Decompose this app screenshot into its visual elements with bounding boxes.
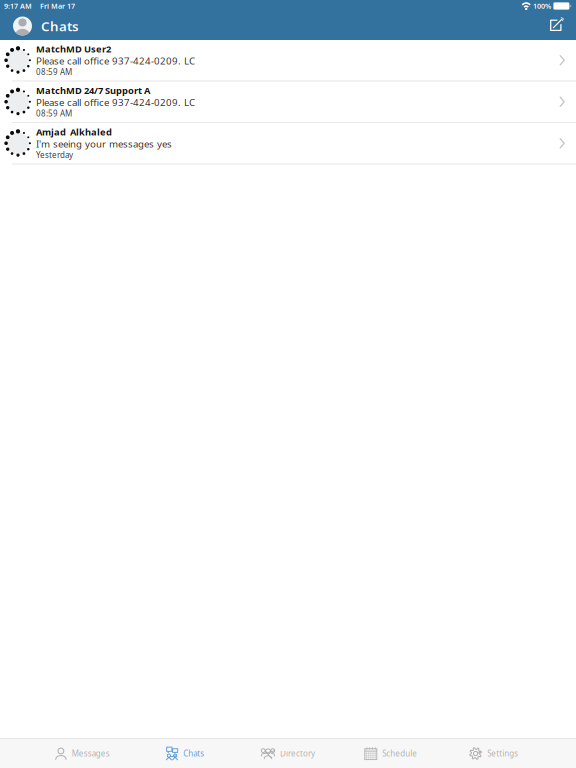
- staticText: Yesterday: [36, 150, 73, 160]
- staticText: MatchMD 24/7 Support A: [36, 84, 150, 97]
- staticText: Messages: [72, 748, 110, 759]
- button[interactable]: Settings: [442, 739, 545, 768]
- staticText: Chats: [41, 17, 79, 35]
- staticText: Please call office 937-424-0209. LC: [36, 54, 195, 67]
- button[interactable]: Directory: [237, 739, 339, 768]
- button[interactable]: MatchMD User2: [0, 40, 576, 81]
- staticText: 08:59 AM: [36, 67, 72, 77]
- button[interactable]: MatchMD 24/7 Support A: [0, 81, 576, 123]
- staticText: 9:17 AM: [4, 1, 32, 11]
- staticText: Settings: [487, 748, 518, 759]
- button[interactable]: Messages: [31, 739, 134, 768]
- staticText: I'm seeing your messages yes: [36, 137, 172, 150]
- staticText: Chats: [183, 748, 204, 759]
- button[interactable]: Amjad Alkhaled: [0, 123, 576, 164]
- button[interactable]: Schedule: [339, 739, 442, 768]
- staticText: Fri Mar 17: [40, 1, 75, 11]
- staticText: Schedule: [382, 748, 417, 759]
- staticText: MatchMD User2: [36, 43, 111, 55]
- staticText: 08:59 AM: [36, 108, 72, 119]
- button[interactable]: Chats: [134, 739, 237, 768]
- staticText: 100%: [533, 1, 551, 11]
- button[interactable]: Compose: [546, 13, 568, 39]
- button[interactable]: Profile: [13, 16, 32, 35]
- staticText: Amjad Alkhaled: [36, 126, 112, 138]
- staticText: Please call office 937-424-0209. LC: [36, 96, 195, 109]
- staticText: Directory: [280, 748, 315, 759]
